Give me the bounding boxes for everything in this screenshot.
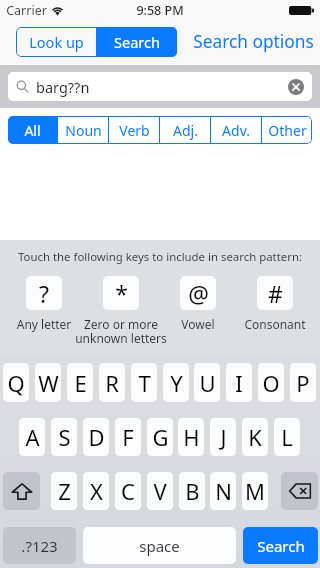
staticText: Adj. [173, 121, 198, 140]
staticText: Other [268, 121, 307, 140]
staticText: P [296, 368, 310, 398]
button[interactable]: Adj. [160, 116, 210, 144]
staticText: F [122, 422, 134, 452]
staticText: B [185, 476, 200, 506]
staticText: I [235, 368, 243, 398]
staticText: R [105, 368, 119, 398]
staticText: Search options [193, 30, 314, 54]
staticText: ? [39, 278, 49, 309]
button[interactable]: R [99, 363, 125, 402]
button[interactable]: N [210, 472, 236, 510]
staticText: E [74, 368, 87, 398]
button[interactable]: V [147, 472, 173, 510]
staticText: Look up [29, 32, 84, 52]
button[interactable]: D [83, 418, 109, 456]
button[interactable]: Adv. [211, 116, 261, 144]
staticText: Touch the following keys to include in s… [0, 249, 320, 265]
staticText: Search [257, 536, 305, 556]
button[interactable]: A [19, 418, 45, 456]
staticText: Q [7, 368, 25, 398]
button[interactable]: T [131, 363, 157, 402]
button[interactable]: X [83, 472, 109, 510]
staticText: V [153, 476, 167, 506]
button[interactable]: # [215, 276, 320, 332]
button[interactable]: O [258, 363, 284, 402]
staticText: * [115, 278, 128, 309]
staticText: Search [114, 32, 160, 52]
button[interactable]: B [179, 472, 205, 510]
staticText: T [138, 368, 151, 398]
staticText: K [248, 422, 262, 452]
staticText: All [24, 121, 41, 140]
button[interactable]: Q [3, 363, 29, 402]
button[interactable]: .?123 [3, 527, 76, 564]
button[interactable]: Y [163, 363, 189, 402]
button[interactable]: C [115, 472, 141, 510]
button[interactable]: ? [0, 276, 104, 332]
button[interactable]: All [8, 116, 57, 144]
staticText: H [183, 422, 200, 452]
button[interactable]: Delete [281, 472, 318, 510]
staticText: Verb [119, 121, 150, 140]
button[interactable]: barg??n [8, 72, 312, 101]
button[interactable]: Search [243, 527, 318, 564]
staticText: U [199, 368, 216, 398]
staticText: @ [188, 278, 209, 309]
staticText: G [152, 422, 169, 452]
staticText: Z [58, 476, 71, 506]
staticText: space [139, 536, 180, 556]
button[interactable]: P [290, 363, 316, 402]
button[interactable]: Verb [109, 116, 159, 144]
staticText: # [268, 278, 283, 309]
staticText: Adv. [222, 121, 250, 140]
other: Clear text [288, 79, 304, 95]
staticText: D [88, 422, 105, 452]
staticText: Noun [65, 121, 102, 140]
staticText: Vowel [138, 316, 258, 332]
staticText: Consonant [215, 316, 320, 332]
button[interactable]: Other [262, 116, 312, 144]
staticText: O [262, 368, 280, 398]
button[interactable]: K [242, 418, 268, 456]
staticText: C [121, 476, 135, 506]
staticText: .?123 [21, 536, 58, 556]
staticText: Carrier [6, 2, 47, 19]
button[interactable]: space [83, 527, 236, 564]
button[interactable]: U [194, 363, 220, 402]
button[interactable]: Search options [193, 30, 314, 54]
button[interactable]: Search [97, 27, 177, 57]
button[interactable]: F [115, 418, 141, 456]
button[interactable]: W [35, 363, 61, 402]
button[interactable]: Z [51, 472, 77, 510]
button[interactable]: G [147, 418, 173, 456]
staticText: Any letter [0, 316, 104, 332]
button[interactable]: Noun [58, 116, 108, 144]
button[interactable]: Look up [16, 27, 96, 57]
button[interactable]: H [178, 418, 204, 456]
staticText: Y [170, 368, 183, 398]
button[interactable]: J [210, 418, 236, 456]
button[interactable]: S [51, 418, 77, 456]
button[interactable]: L [274, 418, 300, 456]
staticText: M [245, 476, 265, 506]
staticText: Zero or more unknown letters [61, 316, 181, 346]
button[interactable]: E [67, 363, 93, 402]
button[interactable]: @ [138, 276, 258, 332]
staticText: L [281, 422, 293, 452]
staticText: 9:58 PM [136, 2, 184, 19]
staticText: W [38, 368, 59, 398]
staticText: J [220, 422, 227, 452]
button[interactable]: * [61, 276, 181, 346]
button[interactable]: M [242, 472, 268, 510]
staticText: S [58, 422, 71, 452]
staticText: N [215, 476, 232, 506]
button[interactable]: I [226, 363, 252, 402]
staticText: A [25, 422, 40, 452]
button[interactable]: Shift [3, 472, 40, 510]
staticText: barg??n [36, 77, 90, 97]
staticText: X [90, 476, 103, 506]
